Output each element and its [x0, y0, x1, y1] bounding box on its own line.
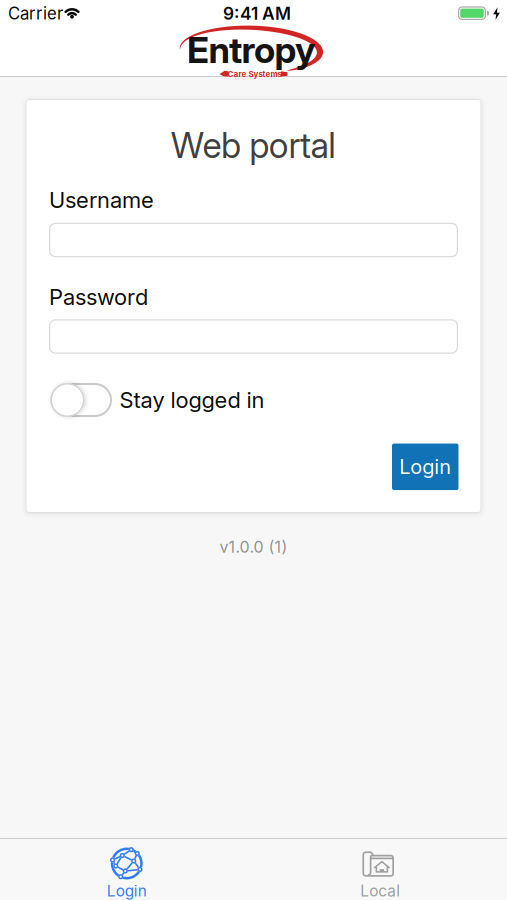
staticText: Login [399, 455, 451, 479]
staticText: Carrier [8, 4, 63, 23]
button[interactable]: Login [81, 838, 173, 900]
staticText: Local [360, 882, 400, 900]
staticText: Web portal [171, 125, 336, 166]
button[interactable]: Username [49, 223, 458, 257]
staticText: Care Systems [227, 69, 281, 79]
button[interactable]: Local [334, 838, 426, 900]
staticText: Login [107, 882, 147, 900]
button[interactable]: Login [392, 444, 458, 490]
staticText: Stay logged in [119, 387, 264, 413]
staticText: v1.0.0 (1) [219, 538, 287, 556]
staticText: Password [49, 284, 148, 310]
staticText: Entropy [187, 29, 315, 71]
staticText: Username [49, 187, 154, 213]
button[interactable]: Stay logged in [50, 383, 112, 417]
staticText: 9:41 AM [223, 3, 291, 24]
button[interactable]: Password [49, 319, 458, 354]
